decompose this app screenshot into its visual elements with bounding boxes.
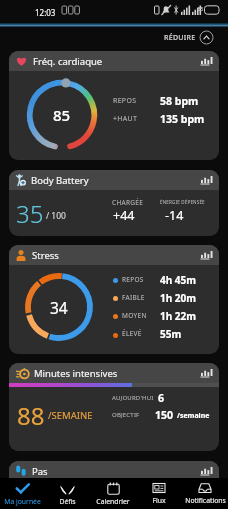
staticText: 135 bpm: [160, 112, 205, 126]
staticText: Fréq. cardiaque: [33, 55, 103, 68]
button[interactable]: Calendrier: [90, 478, 136, 509]
staticText: Body Battery: [31, 174, 89, 187]
staticText: Minutes intensives: [34, 367, 118, 380]
button[interactable]: Minutes intensives: [9, 363, 219, 451]
staticText: REPOS: [113, 96, 137, 106]
staticText: 55m: [160, 327, 182, 341]
staticText: Pas: [32, 465, 48, 478]
staticText: 88: [17, 399, 45, 432]
button[interactable]: Pas: [9, 461, 219, 509]
button[interactable]: Ma journée: [0, 478, 45, 509]
staticText: 4h 45m: [160, 273, 197, 287]
staticText: /semaine: [177, 411, 210, 421]
staticText: /SEMAINE: [48, 409, 93, 422]
staticText: +HAUT: [113, 114, 138, 124]
staticText: 58 bpm: [160, 94, 199, 108]
staticText: REPOS: [122, 275, 144, 284]
staticText: 35: [16, 197, 44, 230]
staticText: ÉLEVÉ: [122, 329, 142, 338]
staticText: 12:03: [35, 7, 56, 18]
staticText: RÉDUIRE: [164, 33, 196, 43]
other: Statistiques: [200, 176, 211, 185]
staticText: 6: [158, 391, 165, 405]
staticText: 85: [53, 105, 71, 125]
button[interactable]: Body Battery: [9, 170, 219, 236]
staticText: Défis: [59, 497, 76, 506]
staticText: OBJECTIF: [112, 411, 140, 419]
other: Statistiques: [200, 369, 211, 378]
staticText: 34: [50, 297, 68, 318]
staticText: 150: [155, 408, 174, 422]
staticText: ÉNERGIE DÉPENSÉE: [160, 199, 205, 205]
staticText: 55: [198, 6, 204, 12]
staticText: Notifications: [185, 496, 226, 505]
staticText: Flux: [152, 496, 166, 505]
staticText: AUJOURD'HUI: [112, 394, 154, 402]
staticText: 1h 22m: [160, 309, 197, 323]
button[interactable]: Stress: [9, 245, 219, 354]
staticText: Calendrier: [96, 497, 130, 506]
staticText: Ma journée: [4, 497, 41, 506]
other: Statistiques: [200, 57, 211, 66]
staticText: MOYEN: [122, 311, 147, 320]
staticText: Stress: [32, 249, 59, 262]
button[interactable]: Défis: [45, 478, 90, 509]
staticText: -14: [165, 207, 184, 224]
other: Statistiques: [200, 467, 211, 476]
other: Statistiques: [200, 251, 211, 260]
staticText: CHARGÉE: [112, 198, 144, 207]
button[interactable]: Notifications: [182, 478, 228, 509]
button[interactable]: Flux: [136, 478, 182, 509]
staticText: FAIBLE: [122, 293, 145, 302]
button[interactable]: RÉDUIRE: [163, 27, 215, 48]
button[interactable]: Fréq. cardiaque: [9, 51, 219, 160]
staticText: / 100: [46, 210, 66, 222]
staticText: 1h 20m: [160, 291, 197, 305]
staticText: +44: [113, 207, 135, 224]
